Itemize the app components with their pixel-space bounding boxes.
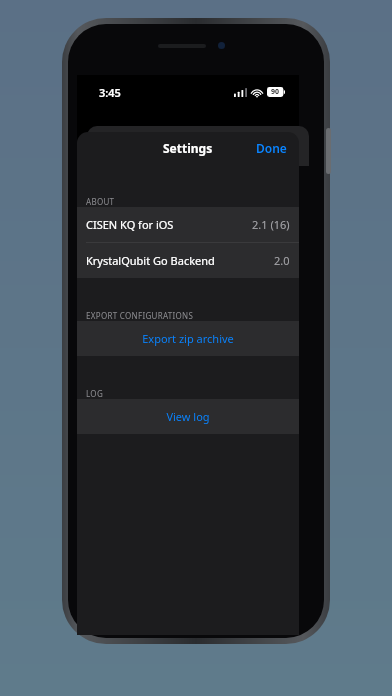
button[interactable]: KrystalQubit Go Backend bbox=[77, 243, 299, 278]
staticText: CISEN KQ for iOS bbox=[86, 217, 174, 232]
button[interactable]: Done bbox=[244, 134, 299, 162]
staticText: ABOUT bbox=[86, 196, 115, 207]
staticText: Settings bbox=[163, 140, 213, 156]
staticText: Done bbox=[256, 140, 287, 156]
staticText: 2.1 (16) bbox=[252, 217, 290, 232]
staticText: 3:45 bbox=[99, 85, 121, 100]
staticText: Export zip archive bbox=[142, 331, 234, 346]
button[interactable]: Export zip archive bbox=[77, 321, 299, 356]
staticText: KrystalQubit Go Backend bbox=[86, 253, 215, 268]
staticText: 90 bbox=[271, 87, 280, 97]
button[interactable]: View log bbox=[77, 399, 299, 434]
staticText: LOG bbox=[86, 388, 104, 399]
button[interactable]: CISEN KQ for iOS bbox=[77, 207, 299, 242]
staticText: View log bbox=[166, 409, 210, 424]
staticText: 2.0 bbox=[274, 253, 290, 268]
staticText: EXPORT CONFIGURATIONS bbox=[86, 310, 194, 321]
